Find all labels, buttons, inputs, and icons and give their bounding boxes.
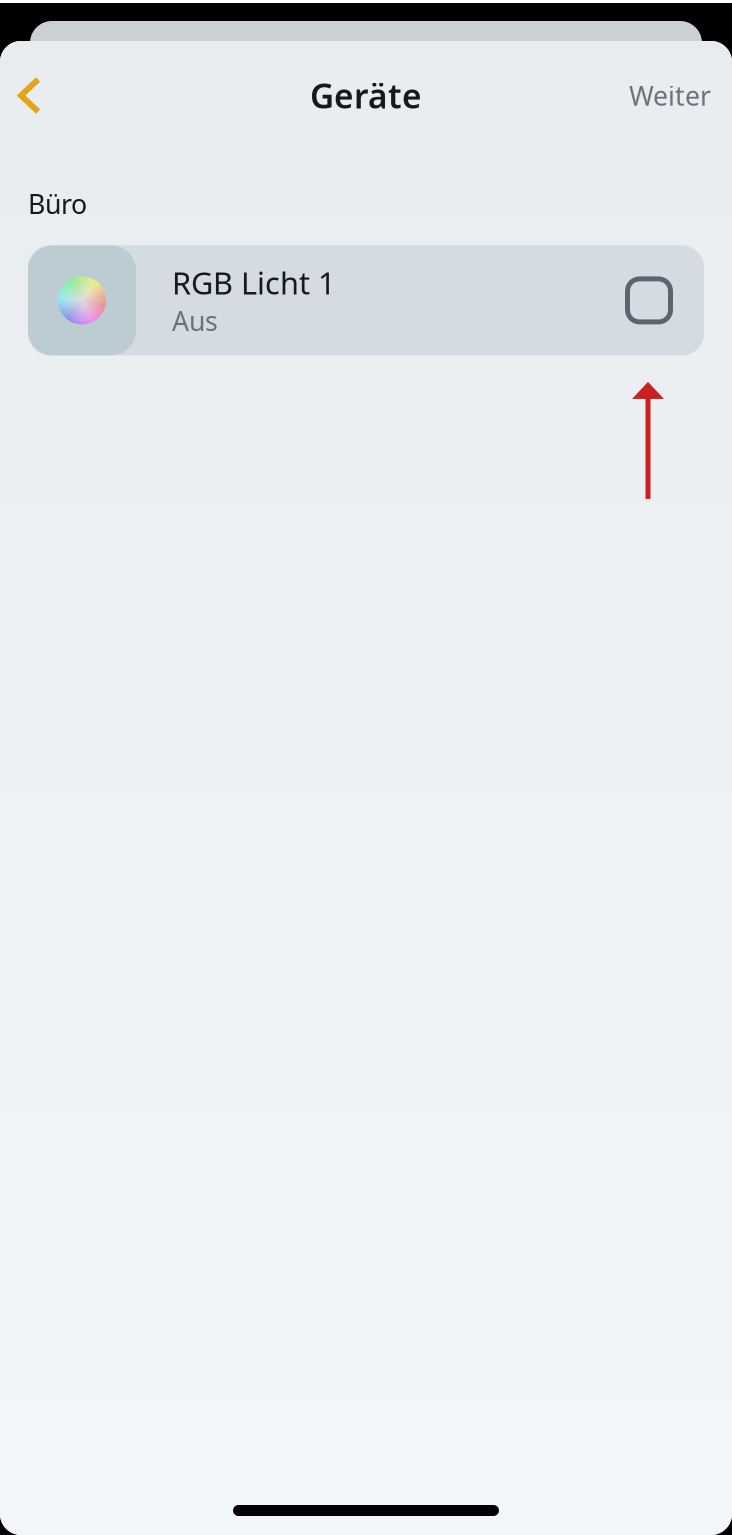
staticText: RGB Licht 1	[172, 262, 336, 303]
button[interactable]: Weiter	[629, 68, 732, 123]
button[interactable]: RGB Licht 1	[28, 245, 704, 355]
staticText: Weiter	[629, 78, 711, 113]
staticText: Aus	[172, 303, 218, 338]
staticText: Büro	[28, 186, 87, 221]
staticText: Geräte	[310, 73, 422, 118]
button[interactable]: Zurück	[0, 66, 42, 124]
